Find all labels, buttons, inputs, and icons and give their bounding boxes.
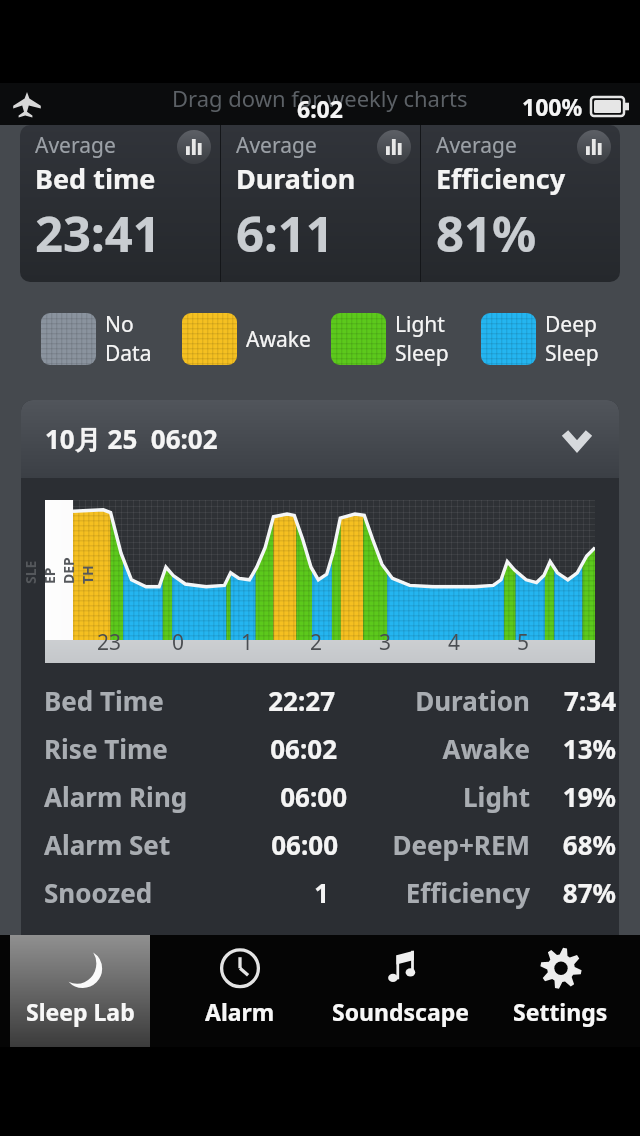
staticText: 7:34	[542, 683, 616, 718]
button[interactable]: Weekly chart	[577, 130, 611, 164]
staticText: Alarm Ring	[44, 779, 188, 814]
staticText: Alarm	[205, 996, 275, 1027]
button[interactable]: Settings	[490, 935, 630, 1047]
staticText: Deep	[545, 310, 597, 339]
staticText: 5	[510, 628, 536, 657]
button[interactable]: Bed Time	[21, 676, 619, 724]
staticText: Soundscape	[332, 996, 469, 1027]
button[interactable]: No	[21, 308, 170, 370]
staticText: 0	[165, 628, 191, 657]
staticText: 23:41	[35, 200, 161, 267]
button[interactable]: Alarm	[170, 935, 310, 1047]
staticText: 19%	[542, 779, 616, 814]
staticText: Settings	[513, 996, 608, 1027]
staticText: 06:02	[168, 731, 337, 766]
button[interactable]: Alarm Set	[21, 820, 619, 868]
staticText: Bed Time	[44, 683, 164, 718]
staticText: 23	[96, 628, 122, 657]
staticText: 100%	[522, 91, 583, 122]
staticText: Alarm Set	[44, 827, 171, 862]
staticText: Sleep	[545, 339, 599, 368]
button[interactable]: Average	[421, 125, 620, 282]
button[interactable]: Sleep Lab	[10, 935, 150, 1047]
button[interactable]: Snoozed	[21, 868, 619, 916]
staticText: Light	[395, 310, 445, 339]
button[interactable]: Deep	[469, 308, 619, 370]
staticText: Bed time	[35, 160, 156, 197]
staticText: Awake	[246, 325, 311, 354]
staticText: 4	[441, 628, 467, 657]
staticText: Efficiency	[436, 160, 566, 197]
button[interactable]: Weekly chart	[377, 130, 411, 164]
staticText: 13%	[542, 731, 616, 766]
staticText: 81%	[436, 200, 537, 267]
button[interactable]: Alarm Ring	[21, 772, 619, 820]
button[interactable]: 10月 25 06:02	[21, 400, 619, 478]
staticText: 06:00	[171, 827, 338, 862]
staticText: 06:00	[188, 779, 347, 814]
staticText: 1	[153, 875, 329, 910]
staticText: Efficiency	[353, 875, 530, 910]
staticText: Data	[105, 339, 152, 368]
staticText: 10月 25 06:02	[45, 421, 218, 457]
other: Airplane mode	[12, 89, 42, 119]
staticText: Snoozed	[44, 875, 153, 910]
staticText: Duration	[359, 683, 530, 718]
button[interactable]: Rise Time	[21, 724, 619, 772]
button[interactable]: Average	[221, 125, 420, 282]
staticText: 68%	[542, 827, 616, 862]
button[interactable]: Light	[319, 308, 469, 370]
staticText: Sleep Lab	[26, 996, 135, 1027]
staticText: Sleep	[395, 339, 449, 368]
staticText: 1	[234, 628, 260, 657]
staticText: 87%	[542, 875, 616, 910]
staticText: Rise Time	[44, 731, 168, 766]
staticText: Average	[436, 131, 517, 160]
other: Collapse	[555, 417, 599, 461]
staticText: Average	[35, 131, 116, 160]
staticText: Average	[236, 131, 317, 160]
staticText: 6:11	[236, 200, 334, 267]
staticText: Drag down for weekly charts	[172, 83, 468, 113]
button[interactable]: Awake	[170, 308, 319, 370]
staticText: Deep+REM	[362, 827, 530, 862]
staticText: No	[105, 310, 134, 339]
button[interactable]: Weekly chart	[177, 130, 211, 164]
staticText: 2	[303, 628, 329, 657]
staticText: 6:02	[297, 93, 343, 124]
staticText: 3	[372, 628, 398, 657]
staticText: Duration	[236, 160, 356, 197]
button[interactable]: Average	[20, 125, 220, 282]
staticText: Light	[371, 779, 530, 814]
button[interactable]: Soundscape	[330, 935, 470, 1047]
staticText: 22:27	[164, 683, 335, 718]
staticText: SLEEP DEPTH	[21, 556, 97, 584]
staticText: Awake	[361, 731, 530, 766]
